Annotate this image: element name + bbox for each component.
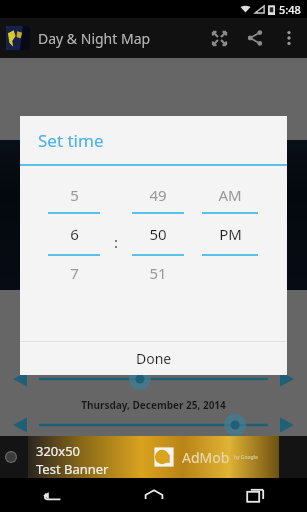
staticText: AdMob	[182, 448, 230, 467]
button[interactable]: Share	[237, 20, 273, 56]
staticText: Test Banner	[36, 460, 109, 478]
button[interactable]: Ad info	[5, 451, 17, 463]
staticText: by Google	[234, 454, 258, 461]
button[interactable]: PM	[196, 214, 264, 254]
staticText: PM	[219, 224, 242, 244]
button[interactable]: AM	[196, 178, 264, 212]
staticText: 50	[149, 224, 167, 244]
staticText: AM	[218, 185, 242, 205]
staticText: Set time	[38, 129, 104, 152]
staticText: 5	[70, 185, 79, 205]
button[interactable]: Home	[103, 478, 205, 512]
button[interactable]: 5	[42, 178, 106, 212]
button[interactable]: 6	[42, 214, 106, 254]
staticText: 5:48	[279, 2, 301, 17]
button[interactable]: Done	[20, 342, 287, 375]
button[interactable]	[40, 366, 267, 392]
staticText: 5:47 AM	[0, 352, 307, 366]
button[interactable]: More options	[273, 22, 305, 54]
button[interactable]: Decrease	[0, 412, 40, 438]
button[interactable]	[40, 412, 267, 438]
staticText: Thursday, December 25, 2014	[0, 398, 307, 412]
staticText: :	[114, 232, 119, 252]
button[interactable]: 51	[126, 256, 190, 290]
button[interactable]: Decrease	[0, 366, 40, 392]
staticText: 320x50	[36, 442, 81, 460]
button[interactable]: Recent apps	[205, 478, 307, 512]
staticText: 6	[70, 224, 79, 244]
button[interactable]: 49	[126, 178, 190, 212]
staticText: Done	[136, 349, 172, 368]
button[interactable]: Back	[0, 478, 103, 512]
button[interactable]: Fullscreen	[201, 20, 237, 56]
staticText: 49	[149, 185, 167, 205]
button[interactable]: 50	[126, 214, 190, 254]
button[interactable]: Increase	[267, 412, 307, 438]
button[interactable]: Increase	[267, 366, 307, 392]
button[interactable]: 7	[42, 256, 106, 290]
staticText: Day & Night Map	[38, 29, 151, 48]
staticText: 7	[70, 263, 79, 283]
staticText: 51	[149, 263, 167, 283]
